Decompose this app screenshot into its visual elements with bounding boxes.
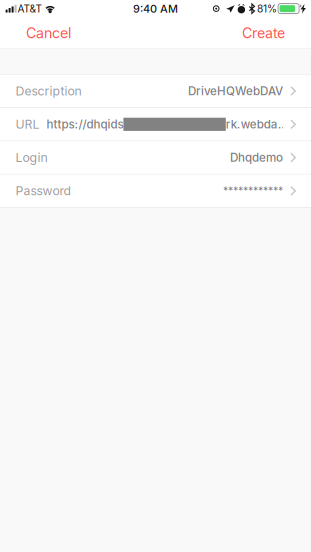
button[interactable]: Create (234, 18, 293, 47)
staticText: URL (15, 117, 39, 132)
staticText: 81% (257, 3, 277, 15)
button[interactable]: Login (0, 141, 311, 175)
staticText: rk.webda… (226, 117, 289, 131)
staticText: Dhqdemo (230, 151, 283, 165)
staticText: Password (15, 183, 71, 198)
staticText: Create (242, 24, 285, 41)
staticText: DriveHQWebDAV (188, 84, 283, 98)
staticText: https://dhqids (46, 117, 123, 131)
button[interactable]: URL (0, 108, 311, 141)
button[interactable]: Description (0, 75, 311, 108)
button[interactable]: Password (0, 175, 311, 208)
staticText: Cancel (26, 24, 71, 41)
staticText: Description (15, 84, 81, 98)
button[interactable]: Cancel (18, 18, 79, 47)
staticText: 9:40 AM (133, 2, 178, 15)
staticText: AT&T (17, 3, 42, 15)
staticText: Login (15, 150, 47, 165)
staticText: ************ (223, 185, 283, 197)
